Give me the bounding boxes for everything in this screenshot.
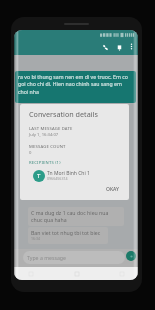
staticText: T	[37, 172, 41, 180]
staticText: 16:34	[31, 236, 40, 241]
staticText: OKAY	[106, 186, 119, 193]
staticText: C ma dug dz 1 cau doc hieu nua chuc qua …	[31, 209, 109, 224]
staticText: MESSAGE COUNT	[29, 144, 66, 150]
staticText: Type a message	[27, 254, 66, 261]
staticText: LAST MESSAGE DATE	[29, 126, 73, 132]
staticText: Ban viet tot nhug tbi tot biec	[31, 229, 101, 236]
staticText: Conversation details	[29, 109, 98, 119]
button[interactable]: OKAY	[102, 184, 123, 195]
staticText: 0966456314	[47, 176, 68, 181]
button[interactable]: Type a message	[23, 251, 125, 264]
button[interactable]: Send	[126, 251, 136, 261]
staticText: Tn Mori Binh Chi 1	[47, 170, 90, 177]
button[interactable]: C ma dug dz 1 cau doc hieu nua chuc qua …	[28, 207, 124, 226]
staticText: RECIPIENTS (1)	[29, 160, 61, 166]
button[interactable]: ra vo bi thung sam nen em di ve truoc. E…	[15, 71, 136, 103]
button[interactable]: Ban viet tot nhug tbi tot biec	[28, 227, 108, 244]
staticText: ra vo bi thung sam nen em di ve truoc. E…	[18, 73, 133, 96]
staticText: July 1, 16:34:07	[29, 132, 59, 138]
button[interactable]: More options	[126, 41, 137, 52]
button[interactable]: Notifications	[112, 40, 126, 54]
button[interactable]: Call	[98, 40, 112, 54]
staticText: 0	[29, 150, 32, 156]
